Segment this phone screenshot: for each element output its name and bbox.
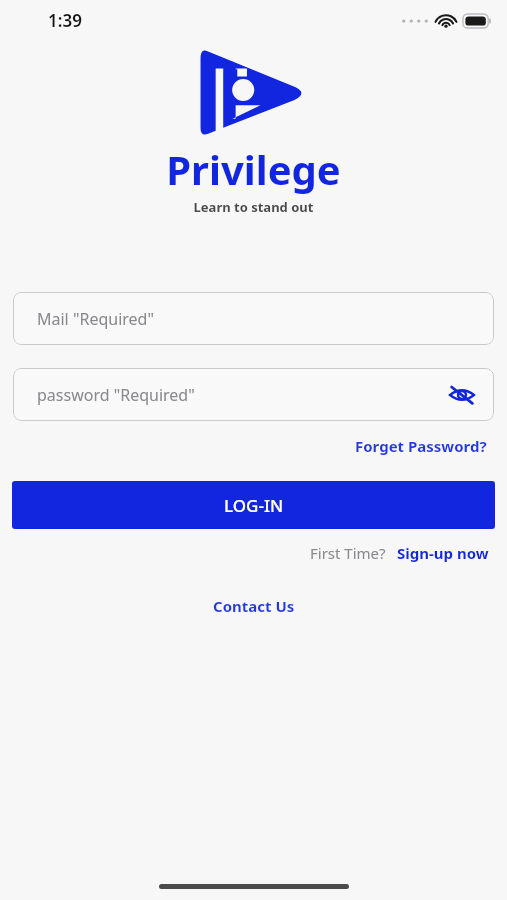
button[interactable]: Show password: [444, 377, 480, 413]
button[interactable]: Forget Password?: [353, 434, 489, 458]
staticText: First Time?: [310, 543, 386, 563]
staticText: Mail "Required": [37, 308, 154, 330]
staticText: Forget Password?: [355, 436, 487, 456]
button[interactable]: Sign-up now: [395, 541, 491, 565]
button[interactable]: Contact Us: [207, 593, 301, 619]
staticText: Sign-up now: [397, 543, 489, 563]
staticText: 1:39: [48, 9, 82, 32]
staticText: Contact Us: [213, 596, 295, 616]
button[interactable]: LOG-IN: [12, 481, 495, 529]
staticText: Privilege: [0, 142, 507, 196]
button[interactable]: password "Required": [13, 368, 494, 421]
staticText: Learn to stand out: [0, 198, 507, 216]
staticText: LOG-IN: [224, 494, 284, 517]
staticText: password "Required": [37, 384, 195, 406]
button[interactable]: Mail "Required": [13, 292, 494, 345]
